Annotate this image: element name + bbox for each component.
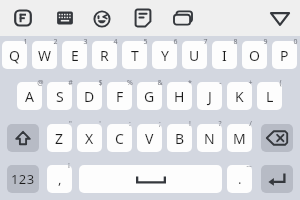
- button[interactable]: S: [47, 82, 72, 110]
- button[interactable]: Clipboard: [169, 4, 197, 32]
- staticText: ¡: [68, 160, 70, 170]
- staticText: Z: [55, 129, 64, 148]
- button[interactable]: M: [227, 124, 252, 152]
- staticText: ': [99, 119, 101, 129]
- staticText: …: [246, 160, 252, 170]
- staticText: 3: [83, 37, 88, 47]
- staticText: G: [144, 87, 155, 106]
- button[interactable]: Space: [79, 165, 222, 193]
- button[interactable]: I: [212, 41, 237, 69]
- staticText: %: [127, 78, 133, 88]
- staticText: 4: [113, 37, 118, 47]
- button[interactable]: F: [107, 82, 132, 110]
- button[interactable]: .: [227, 165, 252, 193]
- staticText: I: [222, 46, 227, 65]
- staticText: W: [38, 46, 52, 65]
- staticText: F: [116, 87, 124, 106]
- staticText: 1: [23, 37, 28, 47]
- staticText: !: [189, 119, 191, 129]
- staticText: 8: [233, 37, 238, 47]
- button[interactable]: Font size: [9, 4, 37, 32]
- button[interactable]: Y: [152, 41, 177, 69]
- button[interactable]: C: [107, 124, 132, 152]
- staticText: 123: [11, 170, 35, 188]
- button[interactable]: P: [272, 41, 297, 69]
- staticText: B: [175, 129, 185, 148]
- button[interactable]: W: [32, 41, 57, 69]
- button[interactable]: ,: [47, 165, 72, 193]
- button[interactable]: A: [17, 82, 42, 110]
- staticText: ,: [58, 170, 62, 188]
- staticText: S: [56, 87, 64, 106]
- button[interactable]: U: [182, 41, 207, 69]
- staticText: 5: [143, 37, 148, 47]
- staticText: A: [25, 87, 34, 106]
- staticText: /: [249, 119, 252, 129]
- staticText: P: [280, 46, 289, 65]
- button[interactable]: X: [77, 124, 102, 152]
- button[interactable]: O: [242, 41, 267, 69]
- staticText: +: [248, 78, 253, 88]
- staticText: R: [100, 46, 109, 65]
- button[interactable]: Q: [2, 41, 27, 69]
- button[interactable]: J: [197, 82, 222, 110]
- staticText: 9: [263, 37, 268, 47]
- staticText: Y: [161, 46, 169, 65]
- button[interactable]: Notes: [129, 4, 157, 32]
- staticText: T: [131, 46, 139, 65]
- staticText: V: [145, 129, 154, 148]
- button[interactable]: Emoji: [88, 5, 116, 33]
- button[interactable]: N: [197, 124, 222, 152]
- staticText: ?: [218, 119, 222, 129]
- button[interactable]: Keyboard: [51, 4, 79, 32]
- button[interactable]: E: [62, 41, 87, 69]
- staticText: H: [174, 87, 185, 106]
- button[interactable]: G: [137, 82, 162, 110]
- staticText: @: [37, 78, 44, 88]
- button[interactable]: D: [77, 82, 102, 110]
- staticText: :: [129, 119, 131, 129]
- button[interactable]: Symbols: [7, 165, 39, 193]
- staticText: .: [238, 170, 242, 188]
- staticText: ;: [159, 119, 161, 129]
- button[interactable]: Enter: [261, 165, 293, 193]
- button[interactable]: Shift: [7, 124, 39, 152]
- staticText: K: [235, 87, 244, 106]
- staticText: 7: [203, 37, 208, 47]
- staticText: N: [204, 129, 215, 148]
- staticText: 2: [53, 37, 58, 47]
- staticText: &: [157, 78, 163, 88]
- staticText: -: [219, 78, 222, 88]
- staticText: *: [188, 78, 192, 88]
- button[interactable]: B: [167, 124, 192, 152]
- staticText: O: [249, 46, 260, 65]
- staticText: (: [279, 78, 282, 88]
- button[interactable]: H: [167, 82, 192, 110]
- button[interactable]: Collapse keyboard: [266, 5, 294, 33]
- button[interactable]: V: [137, 124, 162, 152]
- button[interactable]: T: [122, 41, 147, 69]
- button[interactable]: Z: [47, 124, 72, 152]
- staticText: #: [68, 78, 73, 88]
- staticText: 6: [173, 37, 178, 47]
- button[interactable]: R: [92, 41, 117, 69]
- staticText: C: [115, 129, 124, 148]
- staticText: J: [208, 87, 212, 106]
- staticText: Q: [9, 46, 20, 65]
- staticText: E: [71, 46, 79, 65]
- staticText: U: [189, 46, 200, 65]
- staticText: M: [233, 129, 246, 148]
- staticText: 0: [293, 37, 298, 47]
- staticText: $: [98, 78, 103, 88]
- staticText: ": [69, 119, 72, 129]
- button[interactable]: Backspace: [261, 124, 293, 152]
- staticText: L: [266, 87, 274, 106]
- staticText: D: [84, 87, 95, 106]
- staticText: X: [85, 129, 94, 148]
- button[interactable]: L: [257, 82, 282, 110]
- button[interactable]: K: [227, 82, 252, 110]
